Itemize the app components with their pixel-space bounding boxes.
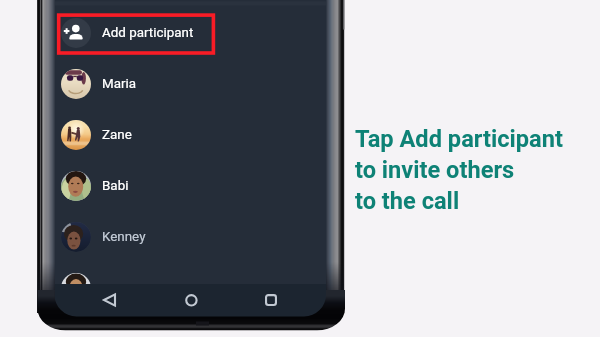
button[interactable]: Home (177, 286, 205, 314)
staticText: Add participant (102, 25, 194, 41)
staticText: Tap Add participant (355, 125, 563, 153)
button[interactable]: Zane (54, 109, 327, 160)
button[interactable]: Babi (54, 160, 327, 211)
button[interactable]: Add participant (54, 7, 327, 58)
staticText: Kenney (102, 229, 146, 245)
button[interactable] (54, 262, 327, 313)
button[interactable]: Maria (54, 58, 327, 109)
button[interactable]: Kenney (54, 211, 327, 262)
staticText: Maria (102, 76, 137, 92)
staticText: Zane (102, 127, 132, 143)
staticText: Babi (102, 178, 129, 194)
button[interactable]: Recent apps (257, 286, 285, 314)
staticText: to the call (355, 187, 460, 215)
staticText: to invite others (355, 156, 515, 184)
button[interactable]: Back (95, 284, 123, 312)
